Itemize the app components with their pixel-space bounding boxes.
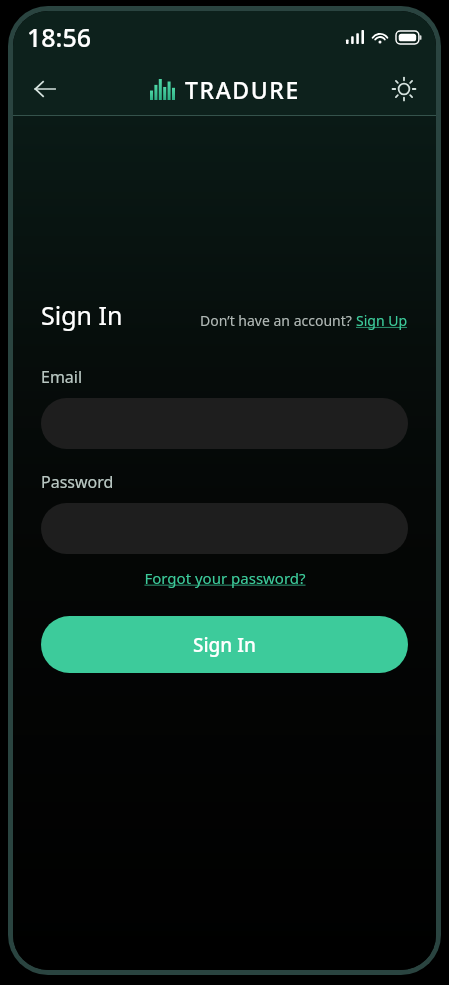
staticText: TRADURE xyxy=(185,74,300,105)
staticText: Sign In xyxy=(41,298,123,332)
staticText: Forgot your password? xyxy=(144,568,306,588)
button[interactable]: Brightness xyxy=(382,67,426,111)
button[interactable]: Sign In xyxy=(41,616,408,673)
button[interactable] xyxy=(41,503,408,554)
button[interactable]: Back xyxy=(23,67,67,111)
staticText: Don’t have an account? xyxy=(200,311,356,330)
staticText: Sign In xyxy=(193,632,256,658)
staticText: Sign Up xyxy=(356,311,408,330)
staticText: Email xyxy=(41,366,83,388)
button[interactable]: Sign Up xyxy=(356,311,408,330)
button[interactable] xyxy=(41,398,408,449)
button[interactable]: Forgot your password? xyxy=(144,568,306,588)
staticText: 18:56 xyxy=(27,20,92,54)
staticText: Password xyxy=(41,471,114,493)
